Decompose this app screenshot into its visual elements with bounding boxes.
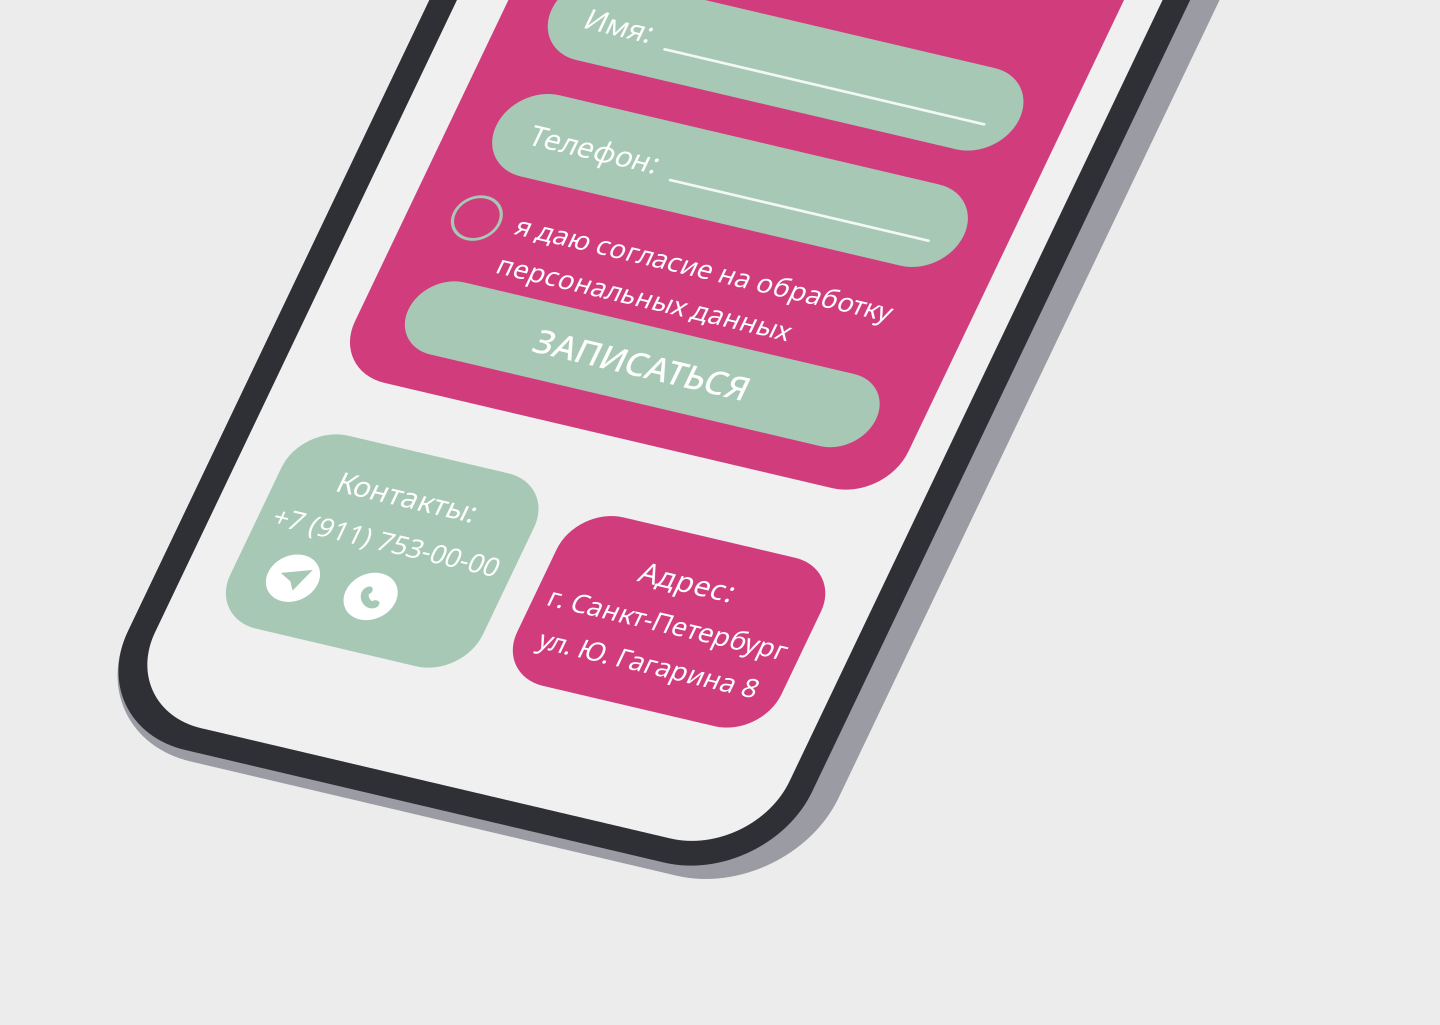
staticText: ул. Ю. Гагарина 8	[953, 145, 1085, 167]
staticText: г. Санкт-Петербург	[947, 119, 1091, 140]
button[interactable]: Контакты:	[768, 64, 921, 190]
staticText: Адрес:	[990, 91, 1047, 114]
staticText: Контакты:	[802, 80, 886, 103]
staticText: +7 (911) 753-00-00	[776, 110, 912, 131]
